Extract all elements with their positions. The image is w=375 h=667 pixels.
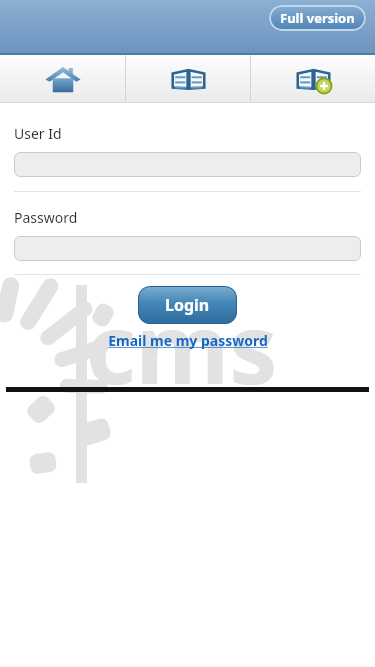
staticText: Login [165, 294, 210, 316]
button[interactable]: Catalog [126, 55, 250, 103]
staticText: User Id [14, 124, 62, 143]
staticText: cms [86, 281, 278, 412]
button[interactable] [14, 152, 361, 177]
button[interactable]: Full version [269, 5, 366, 31]
staticText: Email me my password [108, 331, 268, 350]
staticText: Full version [280, 9, 355, 27]
button[interactable]: Email me my password [102, 329, 274, 352]
button[interactable]: Login [138, 286, 237, 324]
button[interactable] [14, 236, 361, 261]
button[interactable]: Add to catalog [251, 55, 375, 103]
button[interactable]: Home [0, 55, 125, 103]
staticText: Password [14, 208, 78, 227]
